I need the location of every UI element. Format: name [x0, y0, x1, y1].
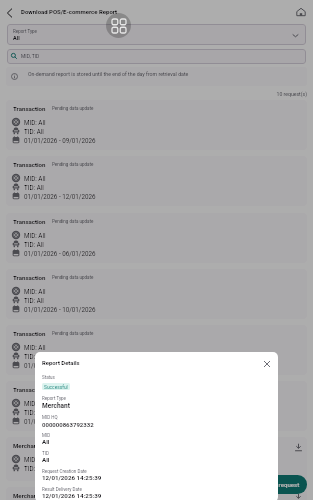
button[interactable]: Close	[259, 356, 275, 372]
staticText: Status	[42, 375, 55, 380]
staticText: MID: All	[24, 232, 46, 239]
staticText: MID, TID	[21, 53, 40, 59]
staticText: Report Type	[13, 29, 37, 34]
button[interactable]: Merchant	[6, 437, 307, 481]
staticText: Report Type	[42, 396, 66, 401]
staticText: 01/01/2026 - 10/01/2026	[24, 362, 96, 369]
staticText: Pending data update	[52, 275, 94, 280]
staticText: Successful	[44, 384, 68, 390]
button[interactable]: Transaction	[6, 100, 307, 150]
staticText: New request	[265, 481, 300, 488]
staticText: TID: All	[24, 409, 44, 416]
button[interactable]: Transaction	[6, 156, 307, 206]
staticText: MID	[42, 433, 51, 438]
staticText: MID: All	[24, 400, 46, 407]
staticText: Transaction	[13, 218, 46, 225]
staticText: Download POS/E-commerce Report	[21, 8, 118, 15]
staticText: All	[42, 438, 50, 445]
staticText: TID: All	[24, 128, 44, 135]
staticText: Merchant	[42, 402, 70, 410]
button[interactable]: MID, TID	[7, 49, 306, 64]
staticText: All	[42, 456, 50, 463]
staticText: TID: All	[24, 297, 44, 304]
staticText: Transaction	[13, 274, 46, 281]
staticText: Request Creation Date	[42, 469, 87, 474]
button[interactable]: Download report	[290, 489, 306, 500]
button[interactable]: Apps grid	[106, 13, 131, 38]
staticText: MID: All	[24, 456, 46, 463]
staticText: Pending data update	[52, 331, 94, 336]
staticText: Transaction	[13, 161, 46, 168]
button[interactable]: Transaction	[6, 381, 307, 431]
staticText: TID	[42, 451, 49, 456]
staticText: MID: All	[24, 175, 46, 182]
button[interactable]: Download report	[290, 439, 306, 455]
staticText: TID: All	[24, 465, 44, 472]
staticText: 01/01/2026 - 06/01/2026	[24, 250, 96, 257]
staticText: Transaction	[13, 330, 46, 337]
button[interactable]: Back	[1, 4, 18, 21]
staticText: Transaction	[13, 386, 46, 393]
button[interactable]: New request	[258, 475, 307, 494]
staticText: Pending data update	[52, 106, 94, 111]
button[interactable]: Report Type	[7, 24, 306, 45]
button[interactable]: Home	[292, 3, 309, 20]
staticText: 01/01/2026 - 12/01/2026	[24, 193, 96, 200]
staticText: Pending data update	[52, 219, 94, 224]
button[interactable]: Transaction	[6, 213, 307, 263]
staticText: MID HQ	[42, 415, 58, 420]
staticText: 12/01/2026 14:25:39	[42, 474, 102, 481]
button[interactable]: Transaction	[6, 269, 307, 319]
staticText: 01/01/2026 - 10/01/2026	[24, 418, 96, 425]
staticText: MID: All	[24, 344, 46, 351]
staticText: 12/01/2026 14:25:39	[42, 492, 102, 499]
staticText: Result Delivery Date	[42, 487, 82, 492]
staticText: TID: All	[24, 353, 44, 360]
staticText: MID: All	[24, 119, 46, 126]
staticText: Pending data update	[52, 162, 94, 167]
staticText: Merchant	[13, 492, 40, 499]
button[interactable]: Transaction	[6, 325, 307, 375]
staticText: Merchant	[13, 442, 40, 449]
staticText: 000000863792332	[42, 421, 94, 428]
staticText: Pending data update	[52, 387, 94, 392]
button[interactable]: Merchant	[6, 487, 307, 500]
staticText: On-demand report is stored until the end…	[28, 71, 189, 77]
staticText: Report Details	[42, 360, 80, 367]
staticText: 01/01/2026 - 09/01/2026	[24, 137, 96, 144]
staticText: TID: All	[24, 184, 44, 191]
staticText: TID: All	[24, 241, 44, 248]
staticText: All	[13, 35, 20, 42]
staticText: 10 request(s)	[0, 91, 307, 97]
staticText: 01/01/2026 - 10/01/2026	[24, 306, 96, 313]
staticText: Transaction	[13, 105, 46, 112]
staticText: MID: All	[24, 288, 46, 295]
